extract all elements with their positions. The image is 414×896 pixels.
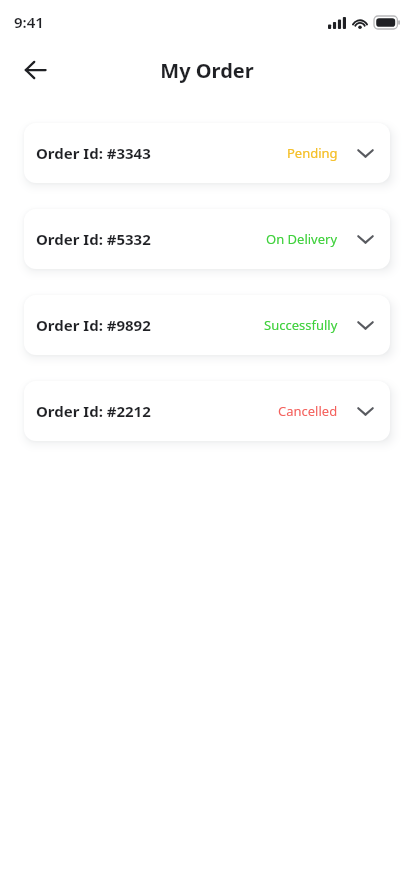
staticText: Order Id: #3343: [36, 143, 151, 163]
staticText: Cancelled: [278, 402, 338, 420]
staticText: Successfully: [264, 316, 338, 334]
staticText: Order Id: #9892: [36, 315, 151, 335]
button[interactable]: Order Id: #2212: [24, 381, 390, 441]
staticText: Pending: [287, 144, 338, 162]
button[interactable]: Expand order details: [352, 398, 378, 424]
staticText: My Order: [0, 57, 414, 84]
staticText: 9:41: [14, 12, 44, 32]
button[interactable]: Expand order details: [352, 312, 378, 338]
button[interactable]: Back: [14, 49, 56, 91]
button[interactable]: Expand order details: [352, 140, 378, 166]
button[interactable]: Order Id: #5332: [24, 209, 390, 269]
button[interactable]: Expand order details: [352, 226, 378, 252]
staticText: Order Id: #5332: [36, 229, 151, 249]
staticText: On Delivery: [266, 230, 338, 248]
button[interactable]: Order Id: #3343: [24, 123, 390, 183]
staticText: Order Id: #2212: [36, 401, 151, 421]
button[interactable]: Order Id: #9892: [24, 295, 390, 355]
